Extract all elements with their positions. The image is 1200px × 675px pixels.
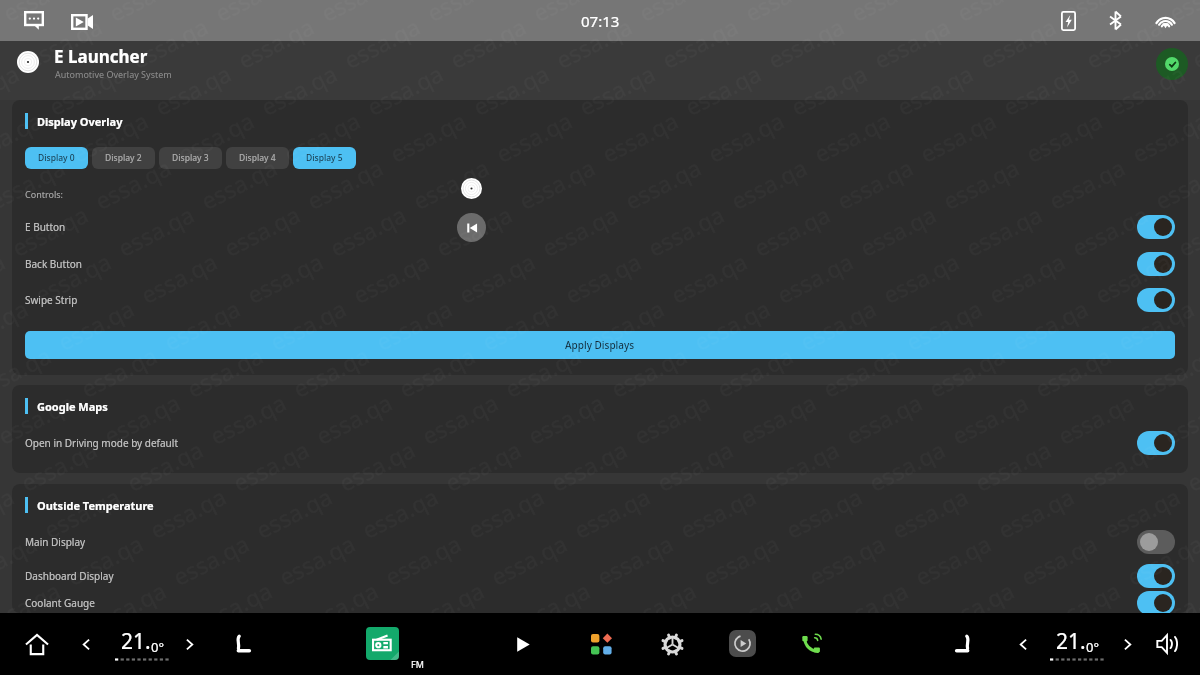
- button[interactable]: Dashboard Display: [12, 558, 1188, 594]
- staticText: essa.qa: [1149, 151, 1200, 216]
- staticText: Display 2: [105, 152, 142, 164]
- button[interactable]: Display 2: [92, 147, 155, 169]
- staticText: essa.qa: [508, 574, 595, 639]
- button[interactable]: Swipe Strip: [12, 282, 1188, 318]
- button[interactable]: Media player: [729, 630, 756, 657]
- button[interactable]: Enabled: [1137, 564, 1175, 588]
- staticText: essa.qa: [969, 433, 1056, 498]
- staticText: essa.qa: [573, 57, 660, 122]
- button[interactable]: Home: [20, 627, 54, 661]
- button[interactable]: Decrease temperature: [1014, 635, 1032, 653]
- button[interactable]: Wi-Fi: [1153, 8, 1178, 33]
- button[interactable]: Video call: [69, 9, 94, 34]
- button[interactable]: Bluetooth: [1103, 8, 1128, 33]
- staticText: essa.qa: [817, 339, 904, 404]
- staticText: essa.qa: [107, 621, 194, 675]
- button[interactable]: Main Display: [12, 524, 1188, 560]
- button[interactable]: Display 4: [226, 147, 289, 169]
- staticText: essa.qa: [467, 57, 554, 122]
- button[interactable]: Increase temperature: [1118, 635, 1136, 653]
- staticText: Apply Displays: [565, 338, 635, 352]
- staticText: Display 4: [239, 152, 276, 164]
- staticText: essa.qa: [720, 574, 807, 639]
- button[interactable]: Phone: [799, 631, 825, 657]
- staticText: essa.qa: [144, 480, 231, 545]
- staticText: Swipe Strip: [25, 293, 78, 307]
- button[interactable]: Seat heater: [952, 631, 978, 657]
- staticText: essa.qa: [1089, 245, 1176, 310]
- staticText: essa.qa: [195, 151, 282, 216]
- button[interactable]: Messages: [21, 8, 46, 33]
- staticText: essa.qa: [656, 10, 743, 75]
- staticText: essa.qa: [1112, 292, 1199, 357]
- button[interactable]: Volume: [1154, 631, 1180, 657]
- button[interactable]: Enabled: [1137, 252, 1175, 276]
- button[interactable]: Play: [509, 631, 535, 657]
- button[interactable]: Temperature 21.0 degrees: [1050, 627, 1106, 661]
- staticText: essa.qa: [444, 10, 531, 75]
- button[interactable]: Decrease temperature: [77, 635, 95, 653]
- button[interactable]: Apply Displays: [25, 331, 1175, 359]
- staticText: essa.qa: [0, 57, 24, 122]
- staticText: essa.qa: [84, 574, 171, 639]
- button[interactable]: Display 0: [25, 147, 88, 169]
- button[interactable]: Seat heater: [227, 631, 253, 657]
- button[interactable]: Enabled: [1137, 288, 1175, 312]
- staticText: essa.qa: [1038, 574, 1125, 639]
- staticText: essa.qa: [0, 386, 79, 451]
- staticText: essa.qa: [0, 104, 47, 169]
- staticText: essa.qa: [1, 621, 88, 675]
- staticText: essa.qa: [1167, 621, 1200, 675]
- button[interactable]: Enabled: [1137, 591, 1175, 613]
- button[interactable]: Service active: [1156, 48, 1188, 80]
- button[interactable]: All apps: [588, 631, 614, 657]
- button[interactable]: Settings: [659, 631, 685, 657]
- button[interactable]: Battery: [1056, 8, 1081, 33]
- staticText: essa.qa: [278, 104, 365, 169]
- button[interactable]: Open in Driving mode by default: [12, 425, 1188, 461]
- staticText: essa.qa: [476, 292, 563, 357]
- staticText: essa.qa: [301, 151, 388, 216]
- button[interactable]: Disabled: [1137, 530, 1175, 554]
- staticText: essa.qa: [1029, 339, 1116, 404]
- staticText: essa.qa: [955, 621, 1042, 675]
- button[interactable]: Display 5: [293, 147, 356, 169]
- button[interactable]: Display 3: [159, 147, 222, 169]
- button[interactable]: FM Radio: [366, 627, 399, 660]
- button[interactable]: Enabled: [1137, 431, 1175, 455]
- staticText: essa.qa: [1172, 198, 1200, 263]
- button[interactable]: E Button: [12, 209, 1188, 245]
- staticText: essa.qa: [43, 57, 130, 122]
- staticText: essa.qa: [181, 339, 268, 404]
- staticText: essa.qa: [794, 292, 881, 357]
- staticText: essa.qa: [75, 339, 162, 404]
- staticText: essa.qa: [711, 339, 798, 404]
- button[interactable]: Coolant Gauge: [12, 585, 1188, 613]
- staticText: essa.qa: [527, 0, 614, 28]
- staticText: 0°: [1086, 638, 1100, 656]
- button[interactable]: Enabled: [1137, 215, 1175, 239]
- button[interactable]: Skip previous: [457, 213, 486, 242]
- staticText: essa.qa: [614, 574, 701, 639]
- button[interactable]: Increase temperature: [180, 635, 198, 653]
- staticText: essa.qa: [545, 433, 632, 498]
- button[interactable]: Back Button: [12, 246, 1188, 282]
- staticText: essa.qa: [264, 292, 351, 357]
- button[interactable]: Temperature 21.0 degrees: [115, 627, 171, 661]
